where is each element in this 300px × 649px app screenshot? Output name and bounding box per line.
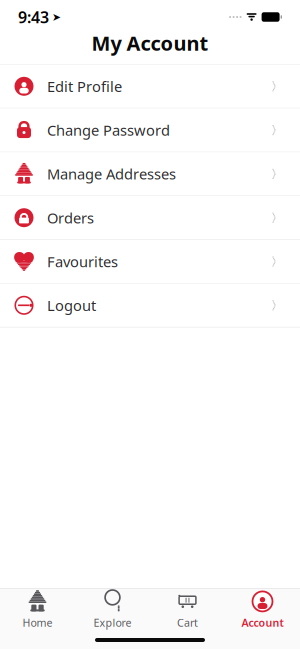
button[interactable]: Favourites (0, 240, 300, 284)
button[interactable]: Explore (75, 590, 150, 630)
staticText: 9:43 (18, 6, 49, 28)
staticText: Home (22, 615, 52, 630)
staticText: ➤ (52, 11, 61, 23)
staticText: Account (241, 615, 283, 630)
staticText: Explore (93, 615, 131, 630)
staticText: Favourites (47, 252, 118, 271)
button[interactable]: Edit Profile (0, 65, 300, 109)
button[interactable]: Change Password (0, 109, 300, 152)
staticText: Logout (47, 296, 96, 315)
staticText: Manage Addresses (47, 164, 176, 184)
staticText: Orders (47, 208, 94, 227)
button[interactable]: Account (225, 590, 300, 630)
staticText: Edit Profile (47, 77, 122, 96)
staticText: Change Password (47, 120, 170, 140)
button[interactable]: Orders (0, 196, 300, 240)
staticText: Cart (177, 615, 198, 630)
button[interactable]: Home (0, 590, 75, 630)
button[interactable]: Manage Addresses (0, 152, 300, 196)
staticText: My Account (91, 30, 208, 56)
button[interactable]: Cart (150, 590, 225, 630)
button[interactable]: Logout (0, 284, 300, 328)
